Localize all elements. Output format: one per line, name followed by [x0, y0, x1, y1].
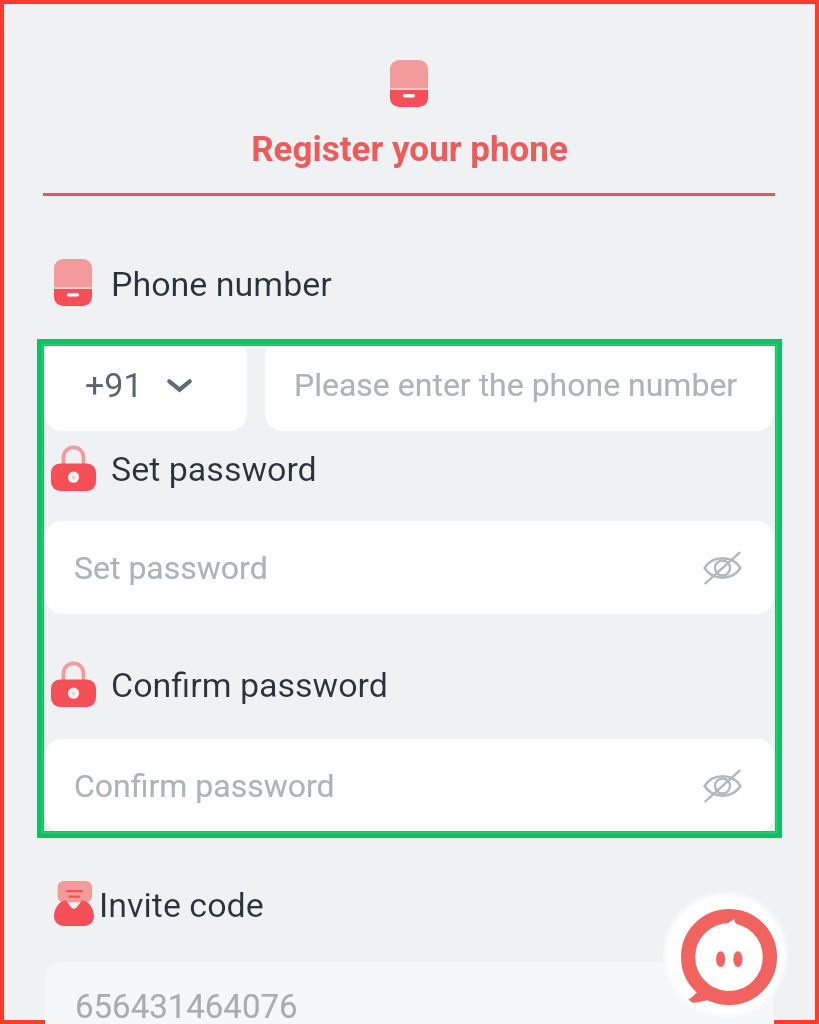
staticText: Please enter the phone number: [294, 366, 738, 404]
button[interactable]: Please enter the phone number: [265, 339, 774, 431]
staticText: Invite code: [99, 885, 264, 925]
button[interactable]: Set password: [45, 521, 774, 614]
button[interactable]: Confirm password: [45, 739, 774, 832]
staticText: Phone number: [111, 264, 332, 304]
staticText: +91: [85, 365, 143, 405]
staticText: Register your phone: [4, 129, 815, 170]
button[interactable]: Customer support chat: [667, 896, 784, 1013]
staticText: Set password: [74, 549, 268, 587]
staticText: Set password: [111, 449, 317, 489]
button[interactable]: Show password: [698, 762, 746, 810]
button[interactable]: +91: [45, 339, 247, 431]
staticText: Confirm password: [74, 767, 335, 805]
staticText: Confirm password: [111, 665, 388, 705]
button[interactable]: 656431464076: [45, 962, 774, 1024]
button[interactable]: Show password: [698, 544, 746, 592]
staticText: 656431464076: [75, 987, 298, 1024]
